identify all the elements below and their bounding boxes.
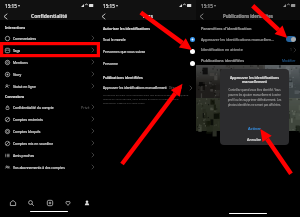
staticText: Modifier — [282, 58, 296, 63]
staticText: Interactions — [5, 25, 26, 30]
staticText: Story — [13, 72, 92, 77]
staticText: Comptes restreints — [13, 117, 92, 122]
staticText: Contrôlez quand vous êtes identifié. Vou… — [226, 88, 283, 106]
staticText: Approuver les identifications manuelleme… — [103, 86, 167, 90]
staticText: Paramètres d'identification — [201, 26, 252, 31]
button[interactable]: Comptes restreints — [0, 113, 98, 125]
staticText: 15:15 — [5, 3, 17, 9]
button[interactable]: Annuler — [220, 134, 289, 145]
button[interactable]: Activer l'approbation manuelle — [286, 36, 296, 42]
staticText: Personnes que vous suivez — [103, 49, 190, 54]
staticText: Commentaires — [13, 36, 92, 41]
button[interactable]: Personnes que vous suivez — [98, 45, 196, 57]
staticText: Publications identifiées — [223, 13, 273, 19]
button[interactable]: Story — [0, 68, 98, 80]
staticText: Vos abonnements à des comptes — [13, 165, 92, 170]
button[interactable]: Retour — [0, 11, 11, 21]
button[interactable]: Accueil — [6, 196, 19, 209]
staticText: Publications identifiées — [103, 75, 143, 80]
staticText: Connexions — [5, 94, 25, 99]
staticText: Tags — [142, 13, 153, 20]
button[interactable]: Approuver les identifications manuelleme… — [98, 83, 196, 92]
staticText: Approuver les identifications manuellem.… — [201, 37, 286, 42]
staticText: Tags — [13, 48, 92, 53]
staticText: Personne — [103, 61, 190, 66]
staticText: Identification en attente — [201, 47, 290, 52]
staticText: Mentions — [13, 60, 92, 65]
staticText: Confidentialité — [31, 13, 68, 20]
button[interactable]: Mentions — [0, 56, 98, 68]
button[interactable]: Amis proches — [0, 149, 98, 161]
button[interactable]: Tags — [0, 44, 98, 56]
button[interactable]: Retour — [196, 11, 207, 21]
staticText: 1 — [290, 47, 292, 52]
button[interactable]: Notifications — [61, 196, 74, 209]
button[interactable]: Comptes mis en sourdine — [0, 137, 98, 149]
button[interactable]: Approuver les identifications manuellem.… — [196, 34, 300, 44]
button[interactable]: Tout le monde — [98, 33, 196, 45]
staticText: Activer — [248, 126, 262, 131]
button[interactable]: Personne — [98, 57, 196, 69]
staticText: Statut en ligne — [13, 84, 92, 89]
button[interactable]: Profil — [80, 196, 93, 209]
staticText: Amis proches — [13, 153, 92, 158]
button[interactable]: Créer — [43, 196, 56, 209]
staticText: Annuler — [247, 137, 262, 142]
button[interactable]: Vos abonnements à des comptes — [0, 161, 98, 173]
staticText: Tout le monde — [103, 37, 190, 42]
button[interactable]: Modifier — [282, 58, 296, 63]
staticText: Autoriser les identifications — [103, 26, 151, 31]
button[interactable]: Retour — [98, 11, 109, 21]
staticText: Privé — [81, 105, 90, 110]
button[interactable]: Statut en ligne — [0, 80, 98, 92]
button[interactable]: Confidentialité du compte — [0, 101, 98, 113]
button[interactable]: Commentaires — [0, 32, 98, 44]
button[interactable]: Activer — [220, 123, 289, 134]
staticText: Approuver les identifications manuelleme… — [228, 75, 281, 84]
staticText: Publications identifiées — [201, 58, 282, 63]
button[interactable]: Comptes bloqués — [0, 125, 98, 137]
staticText: Confidentialité du compte — [13, 105, 81, 110]
button[interactable]: Identification en attente — [196, 44, 300, 55]
button[interactable]: Recherche — [24, 196, 37, 209]
staticText: Choisissez qui peut vous identifier dans… — [103, 93, 191, 105]
staticText: 15:15 — [103, 3, 115, 9]
staticText: Comptes mis en sourdine — [13, 141, 92, 146]
staticText: 15:15 — [201, 3, 213, 9]
staticText: Comptes bloqués — [13, 129, 92, 134]
staticText: Désactivé — [169, 86, 190, 90]
